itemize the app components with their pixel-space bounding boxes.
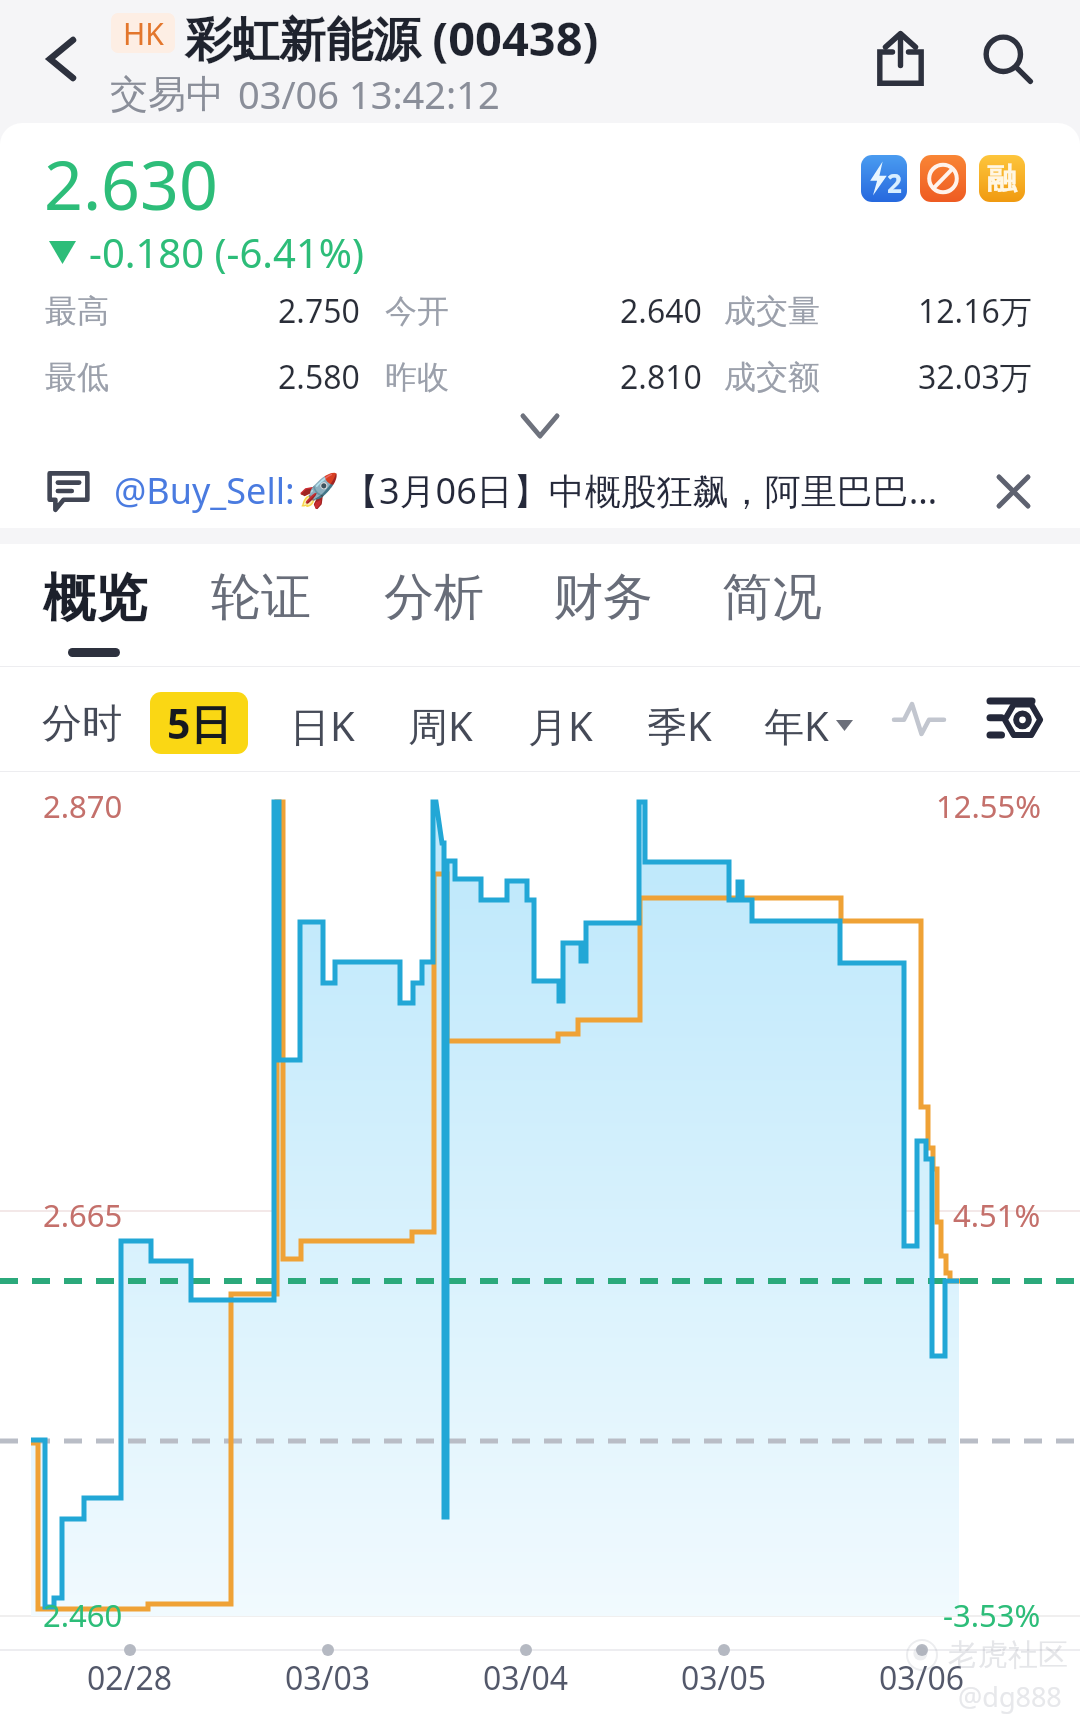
button[interactable]: Indicators: [880, 685, 958, 753]
staticText: 03/03: [285, 1656, 371, 1700]
staticText: 周K: [408, 698, 473, 753]
staticText: 财务: [553, 566, 653, 629]
staticText: 简况: [722, 566, 822, 629]
staticText: 2.460: [43, 1594, 123, 1636]
staticText: 5日: [167, 695, 232, 751]
staticText: 年K: [764, 698, 829, 753]
staticText: 季K: [647, 698, 712, 753]
staticText: 【3月06日】中概股狂飙，阿里巴巴…: [343, 466, 938, 515]
button[interactable]: @Buy_Sell:: [0, 453, 1080, 528]
staticText: 2: [887, 165, 902, 200]
staticText: 03/04: [483, 1656, 569, 1700]
button[interactable]: 日K: [278, 688, 367, 763]
staticText: @Buy_Sell:: [114, 466, 295, 515]
staticText: 最高: [45, 291, 109, 331]
button[interactable]: 月K: [516, 688, 605, 763]
staticText: 02/28: [87, 1656, 173, 1700]
staticText: 2.870: [43, 785, 123, 827]
staticText: 4.51%: [953, 1194, 1041, 1236]
staticText: 🚀: [298, 471, 340, 510]
staticText: 最低: [45, 357, 109, 397]
staticText: -0.180 (-6.41%): [89, 225, 364, 279]
staticText: 交易中: [110, 70, 224, 118]
staticText: 12.55%: [936, 785, 1041, 827]
button[interactable]: Chart settings: [974, 685, 1052, 753]
staticText: 12.16万: [918, 289, 1032, 333]
button[interactable]: Margin: [979, 155, 1025, 202]
staticText: 成交额: [724, 357, 820, 397]
button[interactable]: 年K: [752, 688, 865, 763]
button[interactable]: Search: [965, 16, 1051, 102]
button[interactable]: 分时: [30, 688, 134, 758]
button[interactable]: 周K: [396, 688, 485, 763]
button[interactable]: 简况: [708, 554, 836, 641]
button[interactable]: Level 2 quotes: [861, 155, 907, 202]
button[interactable]: 季K: [635, 688, 724, 763]
button[interactable]: 概览: [29, 554, 161, 644]
staticText: 03/06 13:42:12: [238, 68, 500, 120]
staticText: 日K: [290, 698, 355, 753]
staticText: 2.640: [620, 289, 702, 333]
staticText: @dg888: [958, 1678, 1062, 1715]
button[interactable]: 分析: [370, 554, 498, 641]
staticText: 老虎社区: [948, 1636, 1068, 1674]
staticText: 2.580: [278, 355, 360, 399]
button[interactable]: 财务: [539, 554, 667, 641]
button[interactable]: 轮证: [197, 554, 325, 641]
staticText: 轮证: [211, 566, 311, 629]
staticText: 月K: [528, 698, 593, 753]
staticText: 2.750: [278, 289, 360, 333]
button[interactable]: Close: [980, 458, 1046, 524]
staticText: HK: [123, 13, 164, 53]
button[interactable]: 5日: [150, 692, 248, 754]
staticText: 彩虹新能源 (00438): [185, 6, 599, 70]
staticText: 分时: [42, 698, 122, 748]
staticText: 2.630: [44, 137, 218, 230]
staticText: 03/06: [879, 1656, 965, 1700]
staticText: 成交量: [724, 291, 820, 331]
staticText: 2.665: [43, 1194, 123, 1236]
staticText: 今开: [385, 291, 449, 331]
staticText: 融: [987, 160, 1017, 198]
staticText: 概览: [43, 566, 147, 632]
staticText: 2.810: [620, 355, 702, 399]
button[interactable]: Share: [857, 16, 943, 102]
staticText: 03/05: [681, 1656, 767, 1700]
button[interactable]: Back: [12, 16, 107, 101]
staticText: 分析: [384, 566, 484, 629]
staticText: -3.53%: [943, 1594, 1041, 1636]
button[interactable]: Expand: [500, 403, 580, 449]
button[interactable]: No short selling: [920, 155, 966, 202]
staticText: 昨收: [385, 357, 449, 397]
staticText: 32.03万: [918, 355, 1032, 399]
